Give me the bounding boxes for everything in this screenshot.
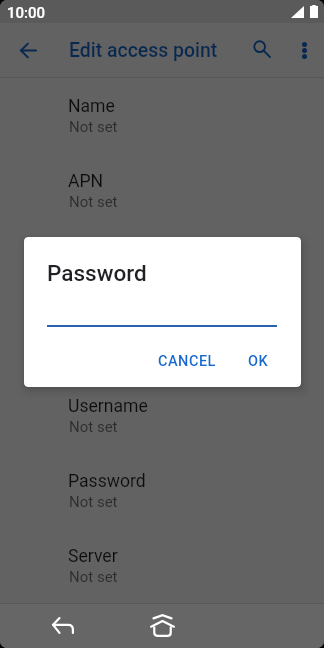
button[interactable]: Back: [40, 603, 85, 648]
staticText: Password: [68, 471, 146, 492]
staticText: Not set: [69, 118, 118, 136]
staticText: Not set: [69, 193, 118, 211]
staticText: Not set: [69, 418, 118, 436]
staticText: 10:00: [7, 4, 46, 22]
staticText: Server: [68, 546, 118, 567]
button[interactable]: More options: [282, 28, 324, 72]
button[interactable]: Search: [240, 27, 284, 71]
button[interactable]: Navigate up: [4, 26, 52, 74]
staticText: Not set: [69, 268, 118, 286]
staticText: APN: [68, 171, 104, 192]
staticText: Name: [68, 96, 115, 117]
button[interactable]: Server: [0, 528, 324, 603]
staticText: Username: [68, 396, 148, 417]
button[interactable]: Proxy: [0, 228, 324, 303]
staticText: Not set: [69, 493, 118, 511]
button[interactable]: Password: [0, 453, 324, 528]
staticText: Port: [68, 321, 102, 342]
staticText: Password: [47, 260, 147, 286]
button[interactable]: APN: [0, 153, 324, 228]
button[interactable]: OK: [232, 344, 285, 378]
button[interactable]: CANCEL: [142, 344, 232, 378]
staticText: CANCEL: [158, 353, 216, 370]
staticText: OK: [248, 353, 269, 370]
button[interactable]: Name: [0, 78, 324, 153]
staticText: Edit access point: [69, 39, 218, 62]
button[interactable]: Home: [140, 603, 185, 648]
button[interactable]: Username: [0, 378, 324, 453]
button[interactable]: Port: [0, 303, 324, 378]
staticText: Not set: [69, 568, 118, 586]
